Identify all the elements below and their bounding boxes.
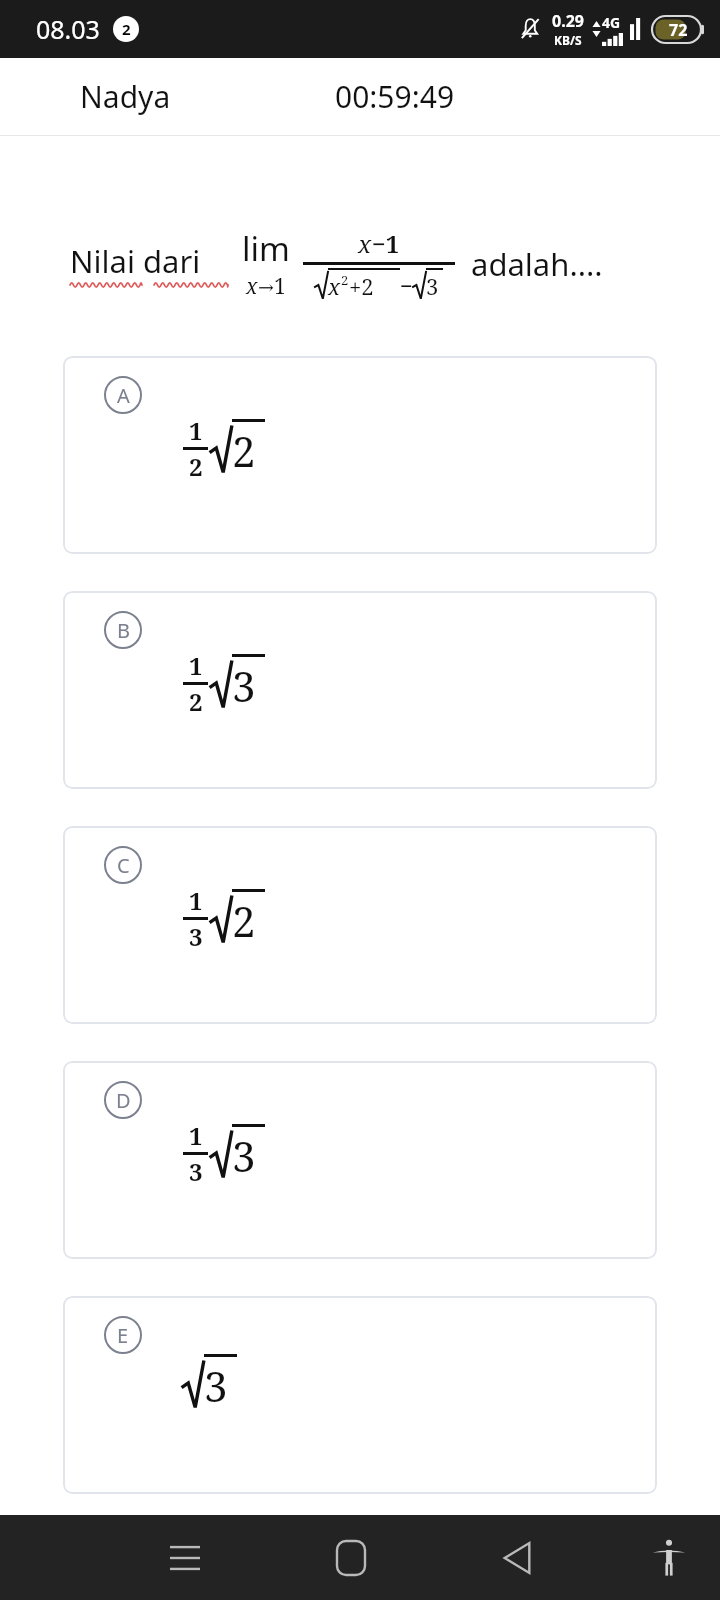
- button[interactable]: C: [63, 826, 657, 1024]
- button[interactable]: Back: [477, 1518, 557, 1598]
- staticText: A: [117, 382, 130, 409]
- staticText: −: [400, 270, 413, 300]
- staticText: →: [258, 276, 274, 298]
- staticText: −1: [372, 227, 400, 260]
- staticText: KB/S: [554, 32, 582, 48]
- staticText: x: [246, 272, 258, 301]
- staticText: 3: [204, 1357, 228, 1414]
- button[interactable]: Home: [311, 1518, 391, 1598]
- button[interactable]: B: [63, 591, 657, 789]
- staticText: 72: [669, 19, 688, 41]
- button[interactable]: A: [63, 356, 657, 554]
- button[interactable]: Recent apps: [145, 1518, 225, 1598]
- staticText: 2: [189, 685, 203, 718]
- staticText: D: [116, 1087, 131, 1114]
- staticText: 1: [274, 272, 286, 301]
- staticText: Nadya: [80, 76, 171, 117]
- staticText: +2: [349, 271, 374, 301]
- button[interactable]: E: [63, 1296, 657, 1494]
- staticText: lim: [242, 226, 290, 271]
- staticText: 3: [426, 271, 439, 301]
- staticText: 3: [232, 1127, 256, 1184]
- staticText: Nilai dari: [70, 240, 201, 282]
- staticText: x: [328, 271, 341, 301]
- staticText: adalah....: [471, 243, 603, 285]
- staticText: C: [117, 852, 130, 879]
- staticText: E: [117, 1322, 129, 1349]
- staticText: 00:59:49: [335, 76, 455, 117]
- staticText: 1: [189, 1119, 203, 1152]
- staticText: 2: [189, 450, 203, 483]
- staticText: 1: [189, 884, 203, 917]
- staticText: 3: [232, 657, 256, 714]
- staticText: 2: [232, 422, 256, 479]
- button[interactable]: Accessibility: [629, 1518, 709, 1598]
- staticText: 08.03: [36, 12, 100, 46]
- staticText: 2: [341, 271, 349, 289]
- staticText: x: [358, 227, 372, 260]
- staticText: 3: [189, 920, 203, 953]
- staticText: 0.29: [552, 10, 584, 32]
- staticText: 1: [189, 649, 203, 682]
- staticText: 2: [232, 892, 256, 949]
- staticText: 2: [122, 19, 131, 39]
- staticText: 1: [189, 414, 203, 447]
- button[interactable]: D: [63, 1061, 657, 1259]
- staticText: 4G: [602, 13, 621, 32]
- staticText: 3: [189, 1155, 203, 1188]
- staticText: B: [117, 617, 130, 644]
